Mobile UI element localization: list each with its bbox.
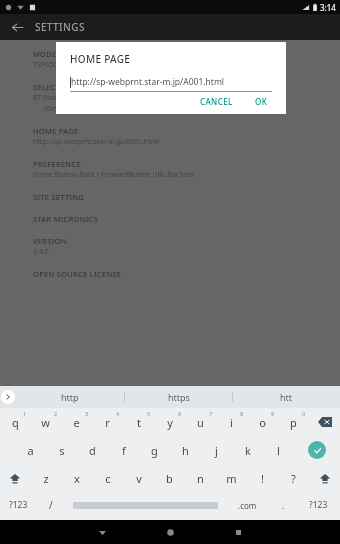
staticText: x [74,471,80,486]
button[interactable]: b [154,464,185,492]
staticText: CANCEL [200,96,233,107]
staticText: 9 [271,410,275,417]
button[interactable]: Back [6,16,28,38]
button[interactable]: o [247,408,278,436]
staticText: SITE SETTING [33,192,85,202]
staticText: 3.4.0 [33,247,49,257]
button[interactable]: CANCEL [196,93,237,110]
button[interactable]: STAR MICRONICS [33,214,340,236]
button[interactable]: https [125,386,232,408]
staticText: PREFERENCE [33,159,81,169]
button[interactable]: c [92,464,123,492]
button[interactable]: w [30,408,61,436]
button[interactable]: HOME PAGE [33,126,340,159]
staticText: VERSION [33,236,67,246]
staticText: e [73,415,80,430]
staticText: l [277,443,280,458]
button[interactable]: e [61,408,92,436]
button[interactable]: a [15,436,46,464]
button[interactable]: MODEL [33,49,340,82]
button[interactable]: ? [278,464,309,492]
button[interactable]: SELECTED PRINTER [33,82,340,126]
button[interactable]: v [123,464,154,492]
button[interactable]: y [154,408,185,436]
button[interactable]: g [139,436,170,464]
button[interactable]: Recents [204,520,272,544]
button[interactable]: SITE SETTING [33,192,340,214]
staticText: w [41,415,50,430]
button[interactable]: Home [136,520,204,544]
staticText: r [105,415,110,430]
button[interactable]: j [201,436,232,464]
staticText: MODEL [33,49,61,59]
staticText: j [215,443,218,458]
button[interactable]: ?123 [0,492,36,518]
button[interactable]: ?123 [297,492,340,518]
staticText: HOME PAGE [70,52,131,66]
button[interactable]: Expand suggestions [1,390,15,404]
button[interactable]: t [123,408,154,436]
staticText: i [230,415,233,430]
button[interactable]: s [46,436,77,464]
staticText: https [168,391,190,403]
staticText: 8 [240,410,244,417]
staticText: b [166,471,173,486]
button[interactable]: z [30,464,61,492]
staticText: 4 [116,410,120,417]
staticText: OK [255,96,268,107]
button[interactable]: d [77,436,108,464]
staticText: p [290,415,297,430]
staticText: 6 [178,410,182,417]
staticText: BT:Star Micronics [33,93,90,103]
button[interactable]: x [61,464,92,492]
staticText: STAR MICRONICS [33,214,99,224]
button[interactable]: htt [233,386,340,408]
button[interactable]: l [263,436,294,464]
button[interactable]: u [185,408,216,436]
staticText: 5 [147,410,151,417]
staticText: m [226,471,237,486]
button[interactable]: Back [68,520,136,544]
button[interactable]: / [36,492,66,518]
staticText: ?123 [9,499,28,511]
button[interactable]: Space [66,492,224,518]
button[interactable]: Enter [294,436,340,464]
staticText: SELECTED PRINTER [33,82,106,92]
button[interactable]: PREFERENCE [33,159,340,192]
staticText: u [197,415,204,430]
button[interactable]: http [16,386,124,408]
staticText: 2 [54,410,58,417]
staticText: Home Button,Back / ForwardButton,URL Bar… [33,170,194,180]
button[interactable]: Backspace [309,408,340,436]
button[interactable]: f [108,436,139,464]
staticText: d [89,443,96,458]
staticText: 3 [85,410,89,417]
button[interactable]: . [270,492,297,518]
button[interactable]: i [216,408,247,436]
button[interactable]: OPEN SOURCE LICENSE [33,269,340,291]
button[interactable]: h [170,436,201,464]
button[interactable]: m [216,464,247,492]
button[interactable]: ! [247,464,278,492]
staticText: (Default setting of Star's printer) [33,104,150,114]
button[interactable]: k [232,436,263,464]
staticText: htt [280,391,293,403]
button[interactable]: Shift [0,464,30,492]
staticText: http [61,391,79,403]
staticText: n [197,471,204,486]
staticText: ? [291,471,296,486]
staticText: 7 [209,410,213,417]
staticText: .com [238,500,257,511]
staticText: f [122,443,126,458]
button[interactable]: p [278,408,309,436]
button[interactable]: n [185,464,216,492]
button[interactable]: VERSION [33,236,340,269]
staticText: / [49,498,53,512]
staticText: y [167,415,173,430]
button[interactable]: .com [224,492,270,518]
button[interactable]: Shift [309,464,340,492]
staticText: 1 [23,410,27,417]
button[interactable]: OK [251,93,272,110]
button[interactable]: r [92,408,123,436]
button[interactable]: q [0,408,30,436]
